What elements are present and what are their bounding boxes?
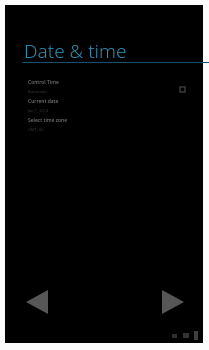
staticText: Automatic (28, 89, 48, 94)
button[interactable]: Control Time (5, 78, 203, 94)
button[interactable]: Select time zone (5, 116, 203, 132)
staticText: Date & time (24, 38, 127, 64)
button[interactable]: Back (22, 288, 52, 316)
staticText: Jan 1, 2014 (28, 108, 49, 113)
staticText: Control Time (28, 79, 59, 86)
button[interactable]: Home (158, 288, 188, 316)
staticText: Select time zone (28, 117, 68, 124)
staticText: GMT+00 (28, 127, 44, 132)
staticText: Current date (28, 98, 59, 105)
button[interactable]: Current date (5, 97, 203, 113)
